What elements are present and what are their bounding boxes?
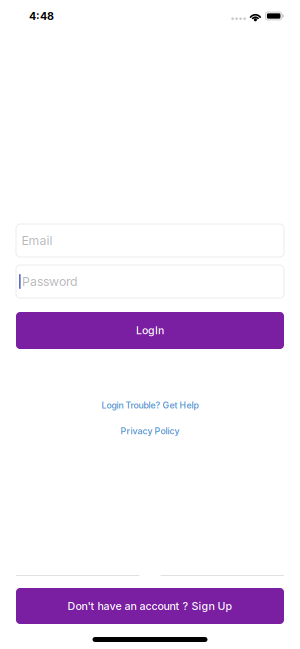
button[interactable]: Don't have an account ? Sign Up xyxy=(16,588,284,624)
button[interactable]: Email xyxy=(16,224,284,257)
staticText: Login Trouble? Get Help xyxy=(101,400,198,411)
staticText: Privacy Policy xyxy=(120,426,179,436)
staticText: 4:48 xyxy=(29,9,54,22)
staticText: Email xyxy=(21,233,52,248)
button[interactable]: Privacy Policy xyxy=(110,421,189,441)
staticText: Don't have an account ? Sign Up xyxy=(67,599,232,612)
button[interactable]: Login Trouble? Get Help xyxy=(91,395,208,416)
button[interactable]: LogIn xyxy=(16,312,284,349)
button[interactable]: Password xyxy=(16,265,284,298)
staticText: LogIn xyxy=(136,324,164,337)
staticText: Password xyxy=(22,274,78,289)
